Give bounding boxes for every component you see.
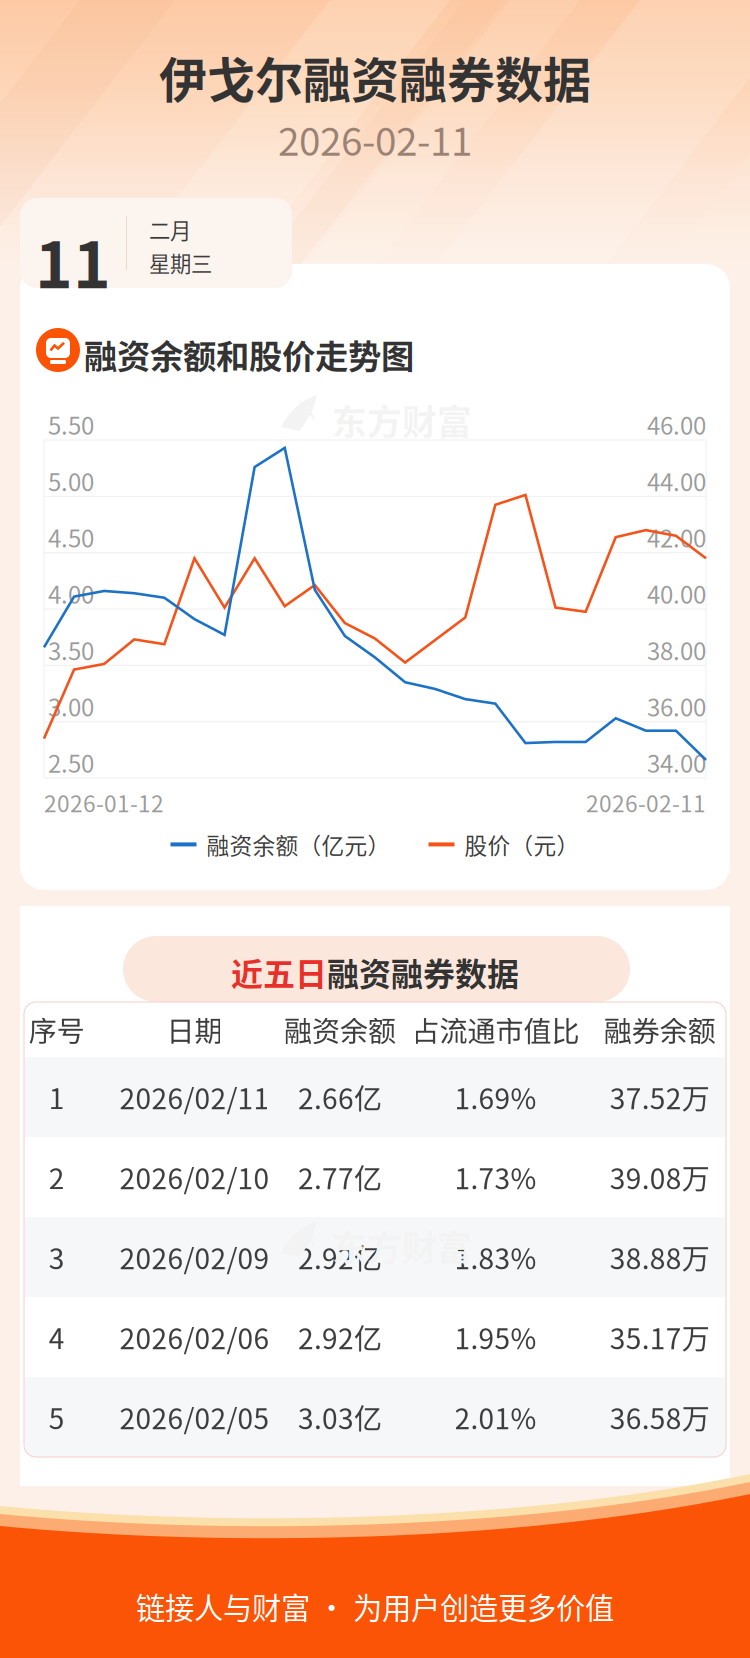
staticText: 3.00 <box>48 689 94 723</box>
staticText: 44.00 <box>647 463 706 498</box>
staticText: 融券余额 <box>604 1009 716 1050</box>
staticText: 38.88万 <box>610 1237 710 1277</box>
staticText: 2.66亿 <box>298 1077 382 1117</box>
staticText: 1.69% <box>455 1077 537 1117</box>
staticText: 34.00 <box>647 745 706 780</box>
staticText: 36.58万 <box>610 1397 710 1437</box>
staticText: 融资余额 <box>284 1009 396 1050</box>
staticText: 38.00 <box>647 632 706 667</box>
staticText: 2026/02/10 <box>119 1157 269 1197</box>
staticText: 2026-02-11 <box>278 111 472 167</box>
staticText: 2026/02/11 <box>119 1077 269 1117</box>
staticText: 37.52万 <box>610 1077 710 1117</box>
staticText: 3.50 <box>48 632 94 667</box>
staticText: 2.92亿 <box>298 1237 382 1277</box>
staticText: 2026/02/09 <box>119 1237 269 1277</box>
staticText: 2.50 <box>48 745 94 780</box>
staticText: 1.73% <box>455 1157 537 1197</box>
staticText: 4.00 <box>48 576 94 611</box>
staticText: 39.08万 <box>610 1157 710 1197</box>
staticText: 1 <box>49 1077 65 1117</box>
staticText: 11 <box>35 214 111 307</box>
staticText: 42.00 <box>647 520 706 554</box>
staticText: 35.17万 <box>610 1317 710 1357</box>
staticText: 4.50 <box>48 520 94 554</box>
staticText: 股价（元） <box>464 828 579 861</box>
staticText: 2026-02-11 <box>586 786 706 819</box>
staticText: 融资融券数据 <box>327 949 519 995</box>
staticText: 融资余额和股价走势图 <box>84 330 414 378</box>
staticText: 2026/02/05 <box>119 1397 269 1437</box>
staticText: 2.01% <box>455 1397 537 1437</box>
staticText: 3.03亿 <box>298 1397 382 1437</box>
staticText: 2.77亿 <box>298 1157 382 1197</box>
staticText: 序号 <box>29 1009 85 1050</box>
staticText: 融资余额（亿元） <box>206 828 390 861</box>
staticText: 46.00 <box>647 407 706 442</box>
staticText: 40.00 <box>647 576 706 611</box>
staticText: 占流通市值比 <box>412 1009 580 1050</box>
staticText: 2 <box>49 1157 65 1197</box>
staticText: 5.50 <box>48 407 94 442</box>
staticText: 2026/02/06 <box>119 1317 269 1357</box>
staticText: 5.00 <box>48 463 94 498</box>
staticText: 东方财富 <box>332 395 472 445</box>
staticText: 链接人与财富 · 为用户创造更多价值 <box>136 1585 614 1627</box>
staticText: 二月 <box>149 214 191 245</box>
staticText: 1.83% <box>455 1237 537 1277</box>
staticText: 4 <box>49 1317 65 1357</box>
staticText: 伊戈尔融资融券数据 <box>159 42 591 111</box>
staticText: 3 <box>49 1237 65 1277</box>
staticText: 2026-01-12 <box>44 786 164 819</box>
staticText: 36.00 <box>647 689 706 723</box>
staticText: 5 <box>49 1397 65 1437</box>
staticText: 日期 <box>166 1009 222 1050</box>
staticText: 星期三 <box>149 247 212 278</box>
staticText: 1.95% <box>455 1317 537 1357</box>
staticText: 东方财富 <box>332 1221 472 1271</box>
staticText: 近五日 <box>231 949 327 995</box>
staticText: 2.92亿 <box>298 1317 382 1357</box>
